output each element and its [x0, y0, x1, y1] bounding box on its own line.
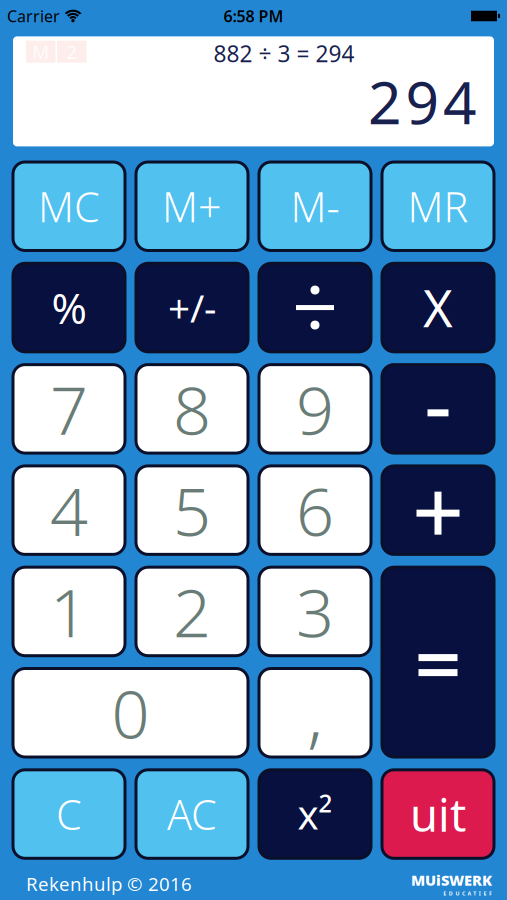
button[interactable]: M+ [136, 162, 248, 250]
staticText: 9 [405, 62, 439, 140]
staticText: 3 [296, 567, 334, 656]
staticText: , [307, 665, 323, 760]
staticText: 7 [50, 365, 88, 453]
button[interactable]: 5 [136, 466, 248, 554]
button[interactable]: 2 [136, 567, 248, 656]
button[interactable]: C [13, 770, 125, 858]
staticText: 882 ÷ 3 = 294 [213, 38, 354, 68]
button[interactable] [382, 466, 494, 554]
button[interactable]: 4 [13, 466, 125, 554]
button[interactable]: uit [382, 770, 494, 858]
staticText: M- [290, 179, 339, 234]
button[interactable]: 7 [13, 365, 125, 453]
staticText: MUiSWERK [411, 870, 492, 890]
staticText: 0 [111, 668, 149, 757]
staticText: MR [407, 179, 468, 234]
staticText: 4 [50, 466, 88, 554]
button[interactable]: M- [259, 162, 371, 250]
button[interactable]: x² [259, 770, 371, 858]
button[interactable]: 3 [259, 567, 371, 656]
staticText: AC [167, 787, 217, 841]
button[interactable] [259, 263, 371, 352]
button[interactable]: X [382, 263, 494, 352]
button[interactable]: % [13, 263, 125, 352]
staticText: Carrier [7, 5, 60, 27]
button[interactable]: 9 [259, 365, 371, 453]
button[interactable]: , [259, 668, 371, 757]
button[interactable] [382, 365, 494, 453]
staticText: x² [297, 787, 332, 841]
button[interactable]: 6 [259, 466, 371, 554]
staticText: 8 [173, 365, 211, 453]
staticText: 9 [296, 365, 334, 453]
button[interactable]: AC [136, 770, 248, 858]
staticText: +/- [168, 282, 216, 333]
button[interactable]: 1 [13, 567, 125, 656]
staticText: 4 [443, 62, 477, 140]
button[interactable]: 8 [136, 365, 248, 453]
staticText: % [51, 279, 86, 336]
staticText: 1 [50, 567, 88, 656]
staticText: EDUCATIEF [443, 890, 492, 897]
button[interactable] [382, 567, 494, 757]
staticText: 5 [173, 466, 211, 554]
staticText: 2 [66, 39, 77, 64]
staticText: 6 [296, 466, 334, 554]
staticText: 6:58 PM [223, 5, 283, 27]
staticText: M+ [162, 179, 222, 234]
button[interactable]: +/- [136, 263, 248, 352]
button[interactable]: 0 [13, 668, 248, 757]
staticText: 2 [368, 62, 402, 140]
staticText: uit [410, 784, 466, 844]
staticText: C [56, 787, 82, 841]
staticText: 2 [173, 567, 211, 656]
button[interactable]: MC [13, 162, 125, 250]
staticText: Rekenhulp © 2016 [26, 871, 192, 896]
button[interactable]: MR [382, 162, 494, 250]
staticText: M [32, 39, 49, 64]
staticText: X [423, 274, 453, 341]
staticText: MC [38, 179, 100, 234]
